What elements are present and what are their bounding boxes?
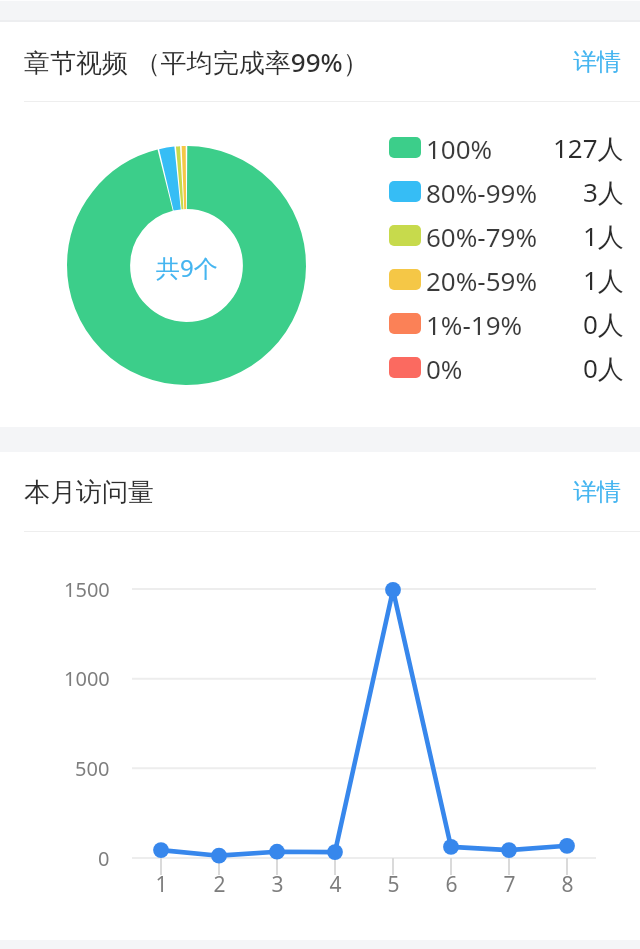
staticText: 20%-59% <box>426 263 538 298</box>
staticText: 100% <box>426 131 493 166</box>
staticText: 2 <box>213 870 226 899</box>
staticText: 5 <box>387 870 400 899</box>
staticText: 1500 <box>64 576 110 603</box>
staticText: 1%-19% <box>426 307 523 342</box>
staticText: 0人 <box>583 306 624 342</box>
staticText: 8 <box>561 870 574 899</box>
staticText: 1 <box>155 870 168 899</box>
staticText: 1000 <box>64 665 110 692</box>
staticText: 3 <box>271 870 284 899</box>
staticText: 0人 <box>583 350 624 386</box>
staticText: 详情 <box>573 47 621 77</box>
staticText: 0% <box>426 351 463 386</box>
staticText: 详情 <box>573 477 621 507</box>
staticText: 7 <box>503 870 516 899</box>
button[interactable]: 详情 <box>543 452 640 532</box>
button[interactable]: 详情 <box>543 22 640 102</box>
button[interactable]: 章节视频完成率环形图 <box>67 146 306 385</box>
staticText: 127人 <box>553 130 624 166</box>
staticText: 3人 <box>583 174 624 210</box>
staticText: 1人 <box>583 262 624 298</box>
other: 本月访问量折线图 <box>0 532 640 940</box>
staticText: 6 <box>445 870 458 899</box>
staticText: 4 <box>329 870 342 899</box>
staticText: 本月访问量 <box>24 476 154 509</box>
staticText: 1人 <box>583 218 624 254</box>
staticText: 0 <box>98 845 110 872</box>
staticText: 60%-79% <box>426 219 538 254</box>
staticText: 80%-99% <box>426 175 538 210</box>
staticText: 500 <box>75 755 110 782</box>
staticText: 章节视频 （平均完成率99%） <box>24 44 369 80</box>
staticText: 共9个 <box>156 251 218 284</box>
